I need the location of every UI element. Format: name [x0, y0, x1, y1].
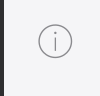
button[interactable]: Info: [0, 0, 100, 96]
